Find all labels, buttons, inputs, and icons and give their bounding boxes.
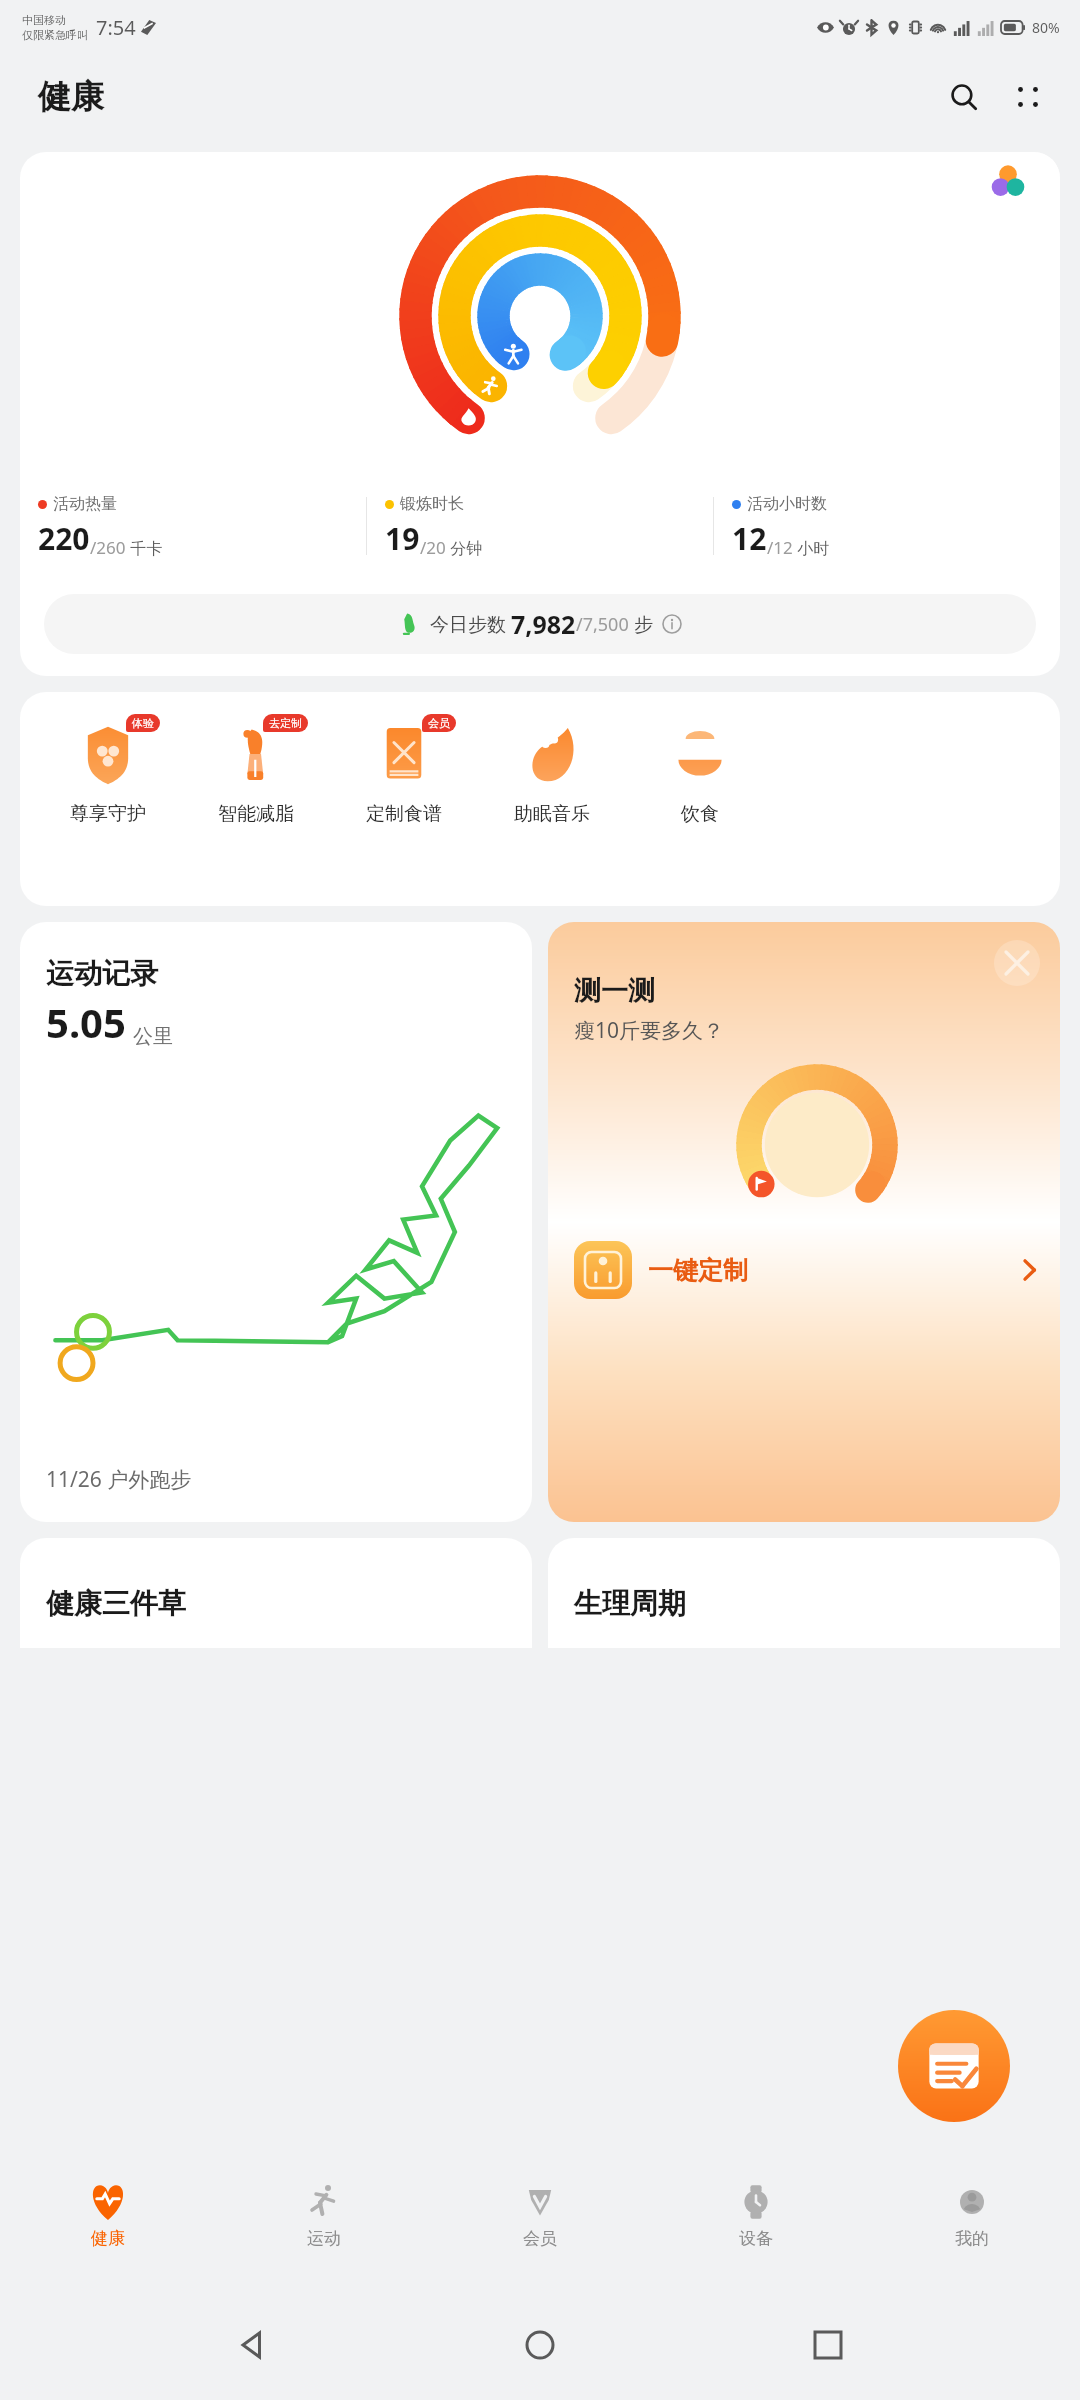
- other: Info: [662, 614, 682, 634]
- button[interactable]: 活动热量: [20, 494, 366, 559]
- staticText: /7,500: [576, 612, 629, 637]
- staticText: 体验: [132, 716, 154, 730]
- staticText: 会员: [523, 2228, 557, 2249]
- button[interactable]: 饮食: [626, 718, 774, 826]
- staticText: 定制食谱: [366, 802, 442, 826]
- button[interactable]: 锻炼时长: [367, 494, 713, 559]
- staticText: /20: [420, 536, 446, 559]
- button[interactable]: Home: [504, 2309, 576, 2381]
- staticText: 活动热量: [53, 494, 117, 514]
- button[interactable]: 运动记录: [20, 922, 532, 1522]
- button[interactable]: 运动: [216, 2140, 432, 2290]
- button[interactable]: Back: [216, 2309, 288, 2381]
- button[interactable]: 活动热量: [20, 152, 1060, 676]
- staticText: 健康: [38, 76, 104, 118]
- staticText: /12: [767, 536, 793, 559]
- staticText: 饮食: [681, 802, 719, 826]
- staticText: 7:54: [96, 14, 136, 41]
- button[interactable]: 会员: [330, 718, 478, 826]
- button[interactable]: 我的: [864, 2140, 1080, 2290]
- staticText: 220: [38, 518, 90, 559]
- staticText: 步: [629, 611, 658, 637]
- staticText: 运动记录: [46, 956, 158, 991]
- staticText: 7,982: [511, 607, 576, 641]
- button[interactable]: Search: [936, 69, 992, 125]
- button[interactable]: Close: [994, 940, 1040, 986]
- button[interactable]: 健康三件草: [20, 1538, 532, 1648]
- button[interactable]: Health data: [956, 152, 1060, 210]
- staticText: 11/26 户外跑步: [46, 1465, 192, 1494]
- button[interactable]: 测一测: [548, 922, 1060, 1522]
- staticText: 尊享守护: [70, 802, 146, 826]
- staticText: 一键定制: [648, 1255, 748, 1286]
- staticText: 小时: [793, 537, 830, 559]
- staticText: 活动小时数: [747, 494, 827, 514]
- button[interactable]: 会员: [432, 2140, 648, 2290]
- button[interactable]: 去定制: [182, 718, 330, 826]
- staticText: 健康三件草: [46, 1586, 186, 1621]
- staticText: 我的: [955, 2228, 989, 2249]
- staticText: 健康: [91, 2228, 125, 2249]
- staticText: 锻炼时长: [400, 494, 464, 514]
- button[interactable]: 健康: [0, 2140, 216, 2290]
- staticText: 今日步数: [430, 611, 511, 637]
- staticText: /260: [90, 536, 126, 559]
- staticText: 80%: [1032, 18, 1060, 37]
- staticText: 5.05: [46, 995, 126, 1049]
- button[interactable]: 今日步数: [44, 594, 1036, 654]
- staticText: 设备: [739, 2228, 773, 2249]
- staticText: 瘦10斤要多久？: [574, 1016, 725, 1045]
- staticText: 分钟: [446, 537, 483, 559]
- staticText: 运动: [307, 2228, 341, 2249]
- staticText: 智能减脂: [218, 802, 294, 826]
- button[interactable]: 活动小时数: [714, 494, 1060, 559]
- staticText: 生理周期: [574, 1586, 686, 1621]
- button[interactable]: More options: [1000, 69, 1056, 125]
- staticText: 仅限紧急呼叫: [22, 28, 88, 42]
- button[interactable]: Add record: [898, 2010, 1010, 2122]
- staticText: 千卡: [126, 537, 163, 559]
- staticText: 测一测: [574, 974, 655, 1008]
- button[interactable]: 助眠音乐: [478, 718, 626, 826]
- staticText: 会员: [428, 716, 450, 730]
- button[interactable]: 体验: [34, 718, 182, 826]
- button[interactable]: 设备: [648, 2140, 864, 2290]
- button[interactable]: Recents: [792, 2309, 864, 2381]
- button[interactable]: 生理周期: [548, 1538, 1060, 1648]
- staticText: 中国移动: [22, 13, 66, 27]
- staticText: 12: [732, 518, 767, 559]
- staticText: 助眠音乐: [514, 802, 590, 826]
- staticText: 19: [385, 518, 420, 559]
- staticText: 公里: [133, 1024, 173, 1049]
- staticText: 去定制: [269, 716, 302, 730]
